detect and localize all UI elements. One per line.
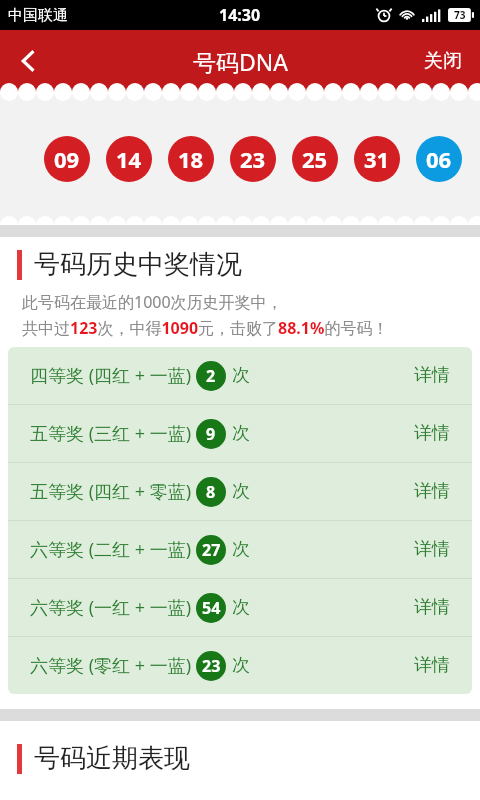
staticText: 五等奖 (三红 + 一蓝) [30,421,192,446]
staticText: 详情 [414,654,450,677]
button[interactable]: Back [0,33,56,89]
button[interactable]: 18 [168,136,214,182]
button[interactable]: 六等奖 (零红 + 一蓝) [8,637,472,694]
staticText: 次 [232,422,250,445]
staticText: 23 [240,144,266,174]
staticText: 号码DNA [193,46,288,77]
button[interactable]: 31 [354,136,400,182]
staticText: 次 [232,654,250,677]
staticText: 次 [232,596,250,619]
staticText: 8 [206,481,216,503]
staticText: 详情 [414,422,450,445]
staticText: 此号码在最近的1000次历史开奖中， [22,291,283,313]
staticText: 次 [232,538,250,561]
staticText: 9 [206,423,216,445]
staticText: 号码历史中奖情况 [34,248,242,281]
button[interactable]: 四等奖 (四红 + 一蓝) [8,347,472,404]
staticText: 六等奖 (零红 + 一蓝) [30,653,192,678]
staticText: 关闭 [424,49,462,73]
staticText: 六等奖 (一红 + 一蓝) [30,595,192,620]
staticText: 23 [202,655,221,677]
staticText: 27 [202,539,221,561]
staticText: 中国联通 [8,6,68,25]
staticText: 详情 [414,480,450,503]
staticText: 六等奖 (二红 + 一蓝) [30,537,192,562]
button[interactable]: 25 [292,136,338,182]
staticText: 54 [202,597,221,619]
button[interactable]: 六等奖 (一红 + 一蓝) [8,579,472,636]
staticText: 14:30 [219,4,261,26]
button[interactable]: 23 [230,136,276,182]
staticText: 详情 [414,596,450,619]
staticText: 09 [54,144,80,174]
button[interactable]: 关闭 [406,35,480,87]
staticText: 共中过123次，中得1090元，击败了88.1%的号码！ [22,317,389,339]
button[interactable]: 06 [416,136,462,182]
staticText: 次 [232,364,250,387]
staticText: 14 [116,144,142,174]
staticText: 次 [232,480,250,503]
staticText: 2 [206,365,216,387]
staticText: 详情 [414,538,450,561]
staticText: 五等奖 (四红 + 零蓝) [30,479,192,504]
staticText: 06 [426,144,452,174]
staticText: 31 [364,144,390,174]
button[interactable]: 14 [106,136,152,182]
staticText: 四等奖 (四红 + 一蓝) [30,363,192,388]
staticText: 25 [302,144,328,174]
staticText: 18 [178,144,204,174]
staticText: 号码近期表现 [34,742,190,775]
button[interactable]: 六等奖 (二红 + 一蓝) [8,521,472,578]
staticText: 详情 [414,364,450,387]
button[interactable]: 09 [44,136,90,182]
button[interactable]: 五等奖 (四红 + 零蓝) [8,463,472,520]
button[interactable]: 五等奖 (三红 + 一蓝) [8,405,472,462]
staticText: 73 [454,8,466,22]
